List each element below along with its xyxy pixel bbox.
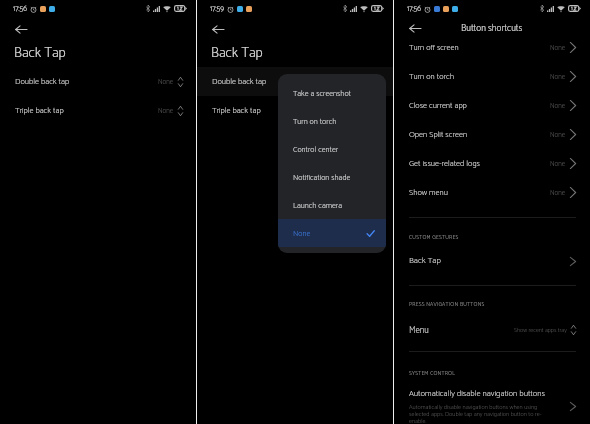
staticText: Close current app bbox=[409, 99, 467, 113]
staticText: Triple back tap bbox=[15, 104, 64, 118]
staticText: None bbox=[550, 42, 566, 53]
button[interactable]: Turn on torch bbox=[278, 107, 386, 135]
staticText: Turn off screen bbox=[409, 41, 459, 55]
button[interactable]: Double back tap bbox=[0, 67, 196, 96]
staticText: Menu bbox=[409, 323, 429, 338]
staticText: None bbox=[550, 129, 566, 140]
staticText: Notification shade bbox=[293, 171, 351, 184]
button[interactable]: Control center bbox=[278, 135, 386, 163]
staticText: None bbox=[293, 227, 311, 240]
staticText: Double back tap bbox=[15, 75, 70, 89]
staticText: Triple back tap bbox=[212, 104, 261, 118]
staticText: Back Tap bbox=[211, 42, 263, 64]
button[interactable]: Triple back tap bbox=[0, 96, 196, 125]
button[interactable]: Menu bbox=[394, 320, 590, 340]
staticText: None bbox=[550, 187, 566, 198]
staticText: Open Split screen bbox=[409, 128, 468, 142]
staticText: Automatically disable navigation buttons… bbox=[409, 402, 542, 424]
button[interactable]: Turn off screen bbox=[394, 33, 590, 62]
button[interactable]: Close current app bbox=[394, 91, 590, 120]
button[interactable]: Open Split screen bbox=[394, 120, 590, 149]
staticText: CUSTOM GESTURES bbox=[409, 233, 459, 242]
staticText: Take a screenshot bbox=[293, 87, 351, 100]
button[interactable]: Turn on torch bbox=[394, 62, 590, 91]
staticText: Turn on torch bbox=[293, 115, 337, 128]
staticText: None bbox=[158, 76, 174, 87]
button[interactable]: None bbox=[278, 219, 386, 247]
staticText: Automatically disable navigation buttons bbox=[409, 387, 551, 401]
button[interactable]: Automatically disable navigation buttons bbox=[394, 387, 590, 424]
button[interactable]: Back bbox=[9, 17, 33, 41]
button[interactable]: Notification shade bbox=[278, 163, 386, 191]
button[interactable]: Back bbox=[206, 17, 230, 41]
staticText: Show recent apps tray bbox=[514, 325, 567, 335]
button[interactable]: Launch camera bbox=[278, 191, 386, 219]
button[interactable]: Double back tap bbox=[197, 67, 393, 96]
staticText: Double back tap bbox=[212, 75, 267, 89]
staticText: Control center bbox=[293, 143, 339, 156]
button[interactable]: Take a screenshot bbox=[278, 79, 386, 107]
button[interactable]: Triple back tap bbox=[197, 96, 393, 125]
staticText: None bbox=[550, 71, 566, 82]
staticText: 17:59 bbox=[210, 3, 224, 15]
staticText: Back Tap bbox=[409, 254, 441, 268]
button[interactable]: Get issue-related logs bbox=[394, 149, 590, 178]
staticText: Show menu bbox=[409, 186, 448, 200]
staticText: 17:56 bbox=[407, 3, 421, 15]
staticText: Launch camera bbox=[293, 199, 342, 212]
staticText: Get issue-related logs bbox=[409, 157, 480, 171]
staticText: Back Tap bbox=[14, 42, 66, 64]
staticText: None bbox=[158, 105, 174, 116]
staticText: 17:56 bbox=[13, 3, 27, 15]
staticText: None bbox=[550, 158, 566, 169]
staticText: SYSTEM CONTROL bbox=[409, 369, 456, 378]
button[interactable]: Show menu bbox=[394, 178, 590, 207]
staticText: PRESS NAVIGATION BUTTONS bbox=[409, 300, 485, 309]
staticText: Turn on torch bbox=[409, 70, 454, 84]
button[interactable]: Back Tap bbox=[394, 251, 590, 271]
button[interactable]: Back bbox=[403, 17, 427, 40]
staticText: Button shortcuts bbox=[461, 21, 523, 36]
staticText: None bbox=[550, 100, 566, 111]
